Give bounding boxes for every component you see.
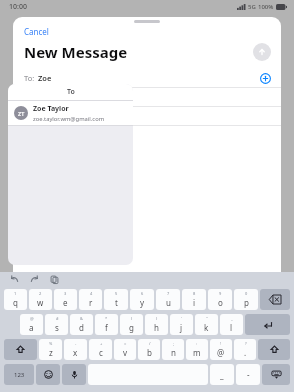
button[interactable]: Hide keyboard [262, 364, 290, 385]
button[interactable]: Backspace [260, 289, 290, 310]
staticText: e [63, 297, 68, 308]
staticText: 100% [258, 3, 274, 11]
button[interactable]: 9 [208, 289, 232, 310]
staticText: c [99, 347, 103, 358]
button[interactable]: # [45, 314, 68, 335]
staticText: ( [131, 316, 133, 321]
button[interactable]: Emoji [36, 364, 60, 385]
button[interactable]: : [186, 339, 208, 360]
staticText: x [73, 347, 78, 358]
staticText: d [79, 322, 84, 333]
staticText: / [149, 341, 151, 346]
button[interactable]: To: [13, 69, 281, 87]
button[interactable]: * [95, 314, 118, 335]
staticText: - [247, 369, 250, 380]
button[interactable]: Add contact [260, 73, 271, 84]
staticText: 6 [141, 291, 144, 296]
staticText: 0 [245, 291, 248, 296]
staticText: y [140, 297, 145, 308]
staticText: o [218, 297, 223, 308]
button[interactable]: _ [220, 314, 243, 335]
staticText: @ [217, 347, 225, 358]
button[interactable]: Subject: [13, 107, 281, 125]
staticText: Zoe [38, 73, 52, 83]
staticText: To: [24, 73, 35, 83]
staticText: s [55, 322, 59, 333]
button[interactable]: Send [253, 43, 271, 61]
staticText: 5 [115, 291, 118, 296]
staticText: q [13, 297, 18, 308]
staticText: w [37, 297, 44, 308]
button[interactable]: 123 [4, 364, 34, 385]
staticText: New Message [24, 42, 253, 62]
staticText: 8 [193, 291, 196, 296]
button[interactable]: 6 [130, 289, 154, 310]
button[interactable]: ( [120, 314, 143, 335]
staticText: _ [220, 369, 224, 380]
button[interactable]: _ [210, 364, 234, 385]
staticText: n [171, 347, 176, 358]
button[interactable]: 2 [29, 289, 52, 310]
staticText: a [29, 322, 34, 333]
button[interactable]: @ [20, 314, 43, 335]
staticText: k [204, 322, 209, 333]
button[interactable]: Cancel [13, 24, 60, 39]
staticText: Cc/Bcc: [24, 92, 50, 102]
staticText: b [147, 347, 152, 358]
staticText: j [180, 322, 183, 333]
button[interactable]: Undo [9, 274, 20, 285]
button[interactable]: + [89, 339, 112, 360]
staticText: ! [220, 341, 222, 346]
staticText: ? [245, 341, 247, 346]
staticText: z [49, 347, 53, 358]
staticText: t [115, 297, 118, 308]
staticText: 1 [14, 291, 17, 296]
staticText: : [196, 341, 198, 346]
staticText: f [105, 322, 108, 333]
button[interactable]: Redo [29, 274, 40, 285]
staticText: l [230, 322, 233, 333]
button[interactable]: " [195, 314, 218, 335]
staticText: % [49, 341, 53, 346]
staticText: Subject: [24, 111, 52, 121]
button[interactable]: 4 [79, 289, 102, 310]
button[interactable]: Shift [258, 339, 290, 360]
button[interactable]: 8 [182, 289, 206, 310]
button[interactable]: 5 [104, 289, 128, 310]
button[interactable]: Shift [4, 339, 37, 360]
staticText: = [124, 341, 127, 346]
button[interactable]: 0 [234, 289, 258, 310]
staticText: Cancel [24, 26, 49, 37]
button[interactable]: ) [145, 314, 168, 335]
button[interactable]: % [39, 339, 62, 360]
staticText: . [244, 347, 247, 358]
staticText: ; [173, 341, 175, 346]
button[interactable]: ' [170, 314, 193, 335]
button[interactable]: - [64, 339, 87, 360]
button[interactable]: ; [162, 339, 184, 360]
staticText: 7 [167, 291, 170, 296]
button[interactable]: Paste [49, 274, 60, 285]
button[interactable]: ZT [8, 101, 133, 125]
button[interactable]: & [70, 314, 93, 335]
staticText: 10:00 [9, 2, 27, 12]
staticText: i [193, 297, 196, 308]
button[interactable]: ! [210, 339, 232, 360]
button[interactable]: Dictation [62, 364, 86, 385]
staticText: 2 [39, 291, 42, 296]
button[interactable]: ? [234, 339, 256, 360]
button[interactable]: 1 [4, 289, 27, 310]
button[interactable]: Return [245, 314, 290, 335]
button[interactable]: 7 [156, 289, 180, 310]
button[interactable]: - [236, 364, 260, 385]
staticText: 5G [248, 3, 256, 11]
button[interactable]: / [138, 339, 160, 360]
staticText: g [129, 322, 134, 333]
button[interactable]: = [114, 339, 136, 360]
staticText: * [105, 316, 108, 321]
staticText: 3 [64, 291, 67, 296]
staticText: Zoe Taylor [33, 104, 69, 114]
button[interactable]: Cc/Bcc: [13, 88, 281, 106]
button[interactable]: 3 [54, 289, 77, 310]
